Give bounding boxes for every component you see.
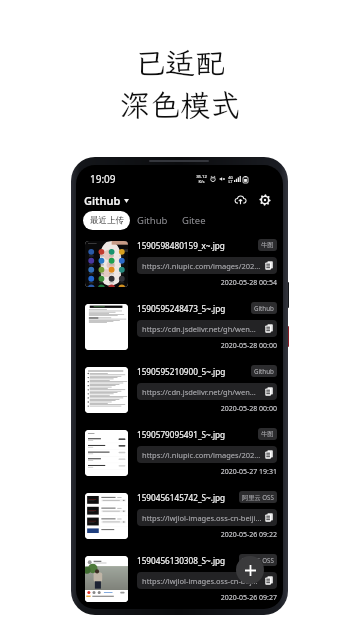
button[interactable]: 1590595210900_5~.jpg xyxy=(76,358,283,421)
staticText: 2020-05-28 00:00 xyxy=(137,341,277,351)
button[interactable]: https://cdn.jsdelivr.net/gh/wen... xyxy=(137,383,277,400)
staticText: 牛图 xyxy=(261,241,274,249)
button[interactable]: 1590456145742_S~.jpg xyxy=(76,484,283,547)
button[interactable]: https://lwjlol-images.oss-cn-beiji... xyxy=(137,509,277,526)
staticText: 已适配 xyxy=(135,43,225,83)
staticText: 1590456130308_S~.jpg xyxy=(137,555,236,566)
staticText: 牛图 xyxy=(261,430,274,438)
button[interactable]: https://i.niupic.com/images/202... xyxy=(137,446,277,463)
staticText: 1590595248473_5~.jpg xyxy=(137,303,248,314)
staticText: 4G LT xyxy=(228,175,233,184)
button[interactable]: Github xyxy=(83,191,130,210)
button[interactable]: 最近上传 xyxy=(83,211,130,230)
button[interactable]: Settings xyxy=(255,190,275,210)
staticText: 35.12 K/s xyxy=(196,174,207,184)
staticText: https://i.niupic.com/images/202... xyxy=(142,450,263,460)
staticText: 阿里云 OSS xyxy=(242,493,274,501)
button[interactable]: 1590598480159_x~.jpg xyxy=(76,232,283,295)
button[interactable]: 1590595248473_5~.jpg xyxy=(76,295,283,358)
staticText: Github xyxy=(137,214,168,227)
staticText: https://lwjlol-images.oss-cn-beiji... xyxy=(142,513,263,523)
staticText: 19:09 xyxy=(90,172,116,186)
staticText: 2020-05-27 19:31 xyxy=(137,467,277,477)
staticText: 深色模式 xyxy=(120,85,240,125)
staticText: 阿里云 OSS xyxy=(242,556,274,564)
staticText: Github xyxy=(254,304,274,312)
staticText: Github xyxy=(254,367,274,375)
button[interactable]: Github xyxy=(130,211,175,230)
staticText: Github xyxy=(84,193,121,208)
staticText: 1590456145742_S~.jpg xyxy=(137,492,236,503)
staticText: 2020-05-26 09:27 xyxy=(137,593,277,603)
button[interactable]: 1590456130308_S~.jpg xyxy=(76,547,283,609)
staticText: 2020-05-28 00:54 xyxy=(137,278,277,288)
button[interactable]: https://cdn.jsdelivr.net/gh/wen... xyxy=(137,320,277,337)
staticText: https://cdn.jsdelivr.net/gh/wen... xyxy=(142,324,263,334)
staticText: 2020-05-28 00:00 xyxy=(137,404,277,414)
button[interactable]: https://i.niupic.com/images/202... xyxy=(137,257,277,274)
staticText: Gitee xyxy=(182,214,206,227)
button[interactable]: 1590579095491_S~.jpg xyxy=(76,421,283,484)
staticText: 2020-05-26 09:22 xyxy=(137,530,277,540)
button[interactable]: Upload xyxy=(230,190,250,210)
staticText: 1590598480159_x~.jpg xyxy=(137,240,255,251)
button[interactable]: https://lwjlol-images.oss-cn-bej... xyxy=(137,572,277,589)
staticText: https://cdn.jsdelivr.net/gh/wen... xyxy=(142,387,263,397)
staticText: https://lwjlol-images.oss-cn-bej... xyxy=(142,576,263,586)
button[interactable]: Add xyxy=(236,556,264,584)
staticText: 1590579095491_S~.jpg xyxy=(137,429,255,440)
staticText: 1590595210900_5~.jpg xyxy=(137,366,248,377)
staticText: https://i.niupic.com/images/202... xyxy=(142,261,263,271)
button[interactable]: Gitee xyxy=(175,211,213,230)
staticText: 最近上传 xyxy=(90,215,124,226)
